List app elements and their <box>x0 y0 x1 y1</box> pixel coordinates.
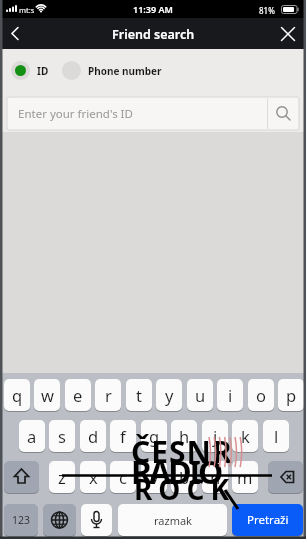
staticText: k <box>241 425 250 447</box>
staticText: h <box>179 425 190 447</box>
staticText: j <box>213 425 218 447</box>
staticText: e <box>73 384 83 406</box>
button[interactable]: l <box>263 420 289 452</box>
staticText: o <box>256 384 266 406</box>
staticText: RADIO <box>131 450 221 494</box>
staticText: Phone number <box>88 64 162 78</box>
button[interactable] <box>81 504 112 536</box>
staticText: v <box>150 466 159 488</box>
staticText: u <box>195 384 206 406</box>
button[interactable]: v <box>141 461 167 493</box>
button[interactable] <box>275 21 301 47</box>
button[interactable] <box>232 504 303 536</box>
staticText: r <box>105 384 112 406</box>
staticText: m <box>237 466 253 488</box>
button[interactable]: j <box>202 420 228 452</box>
staticText: w <box>41 384 54 406</box>
button[interactable]: a <box>19 420 45 452</box>
button[interactable]: g <box>141 420 167 452</box>
button[interactable] <box>2 21 28 47</box>
button[interactable]: k <box>232 420 258 452</box>
button[interactable]: p <box>278 379 304 411</box>
staticText: mt:s <box>19 5 35 15</box>
button[interactable] <box>4 461 39 493</box>
button[interactable]: Enter your friend's ID <box>7 97 299 130</box>
button[interactable]: r <box>95 379 121 411</box>
staticText: Friend search <box>112 26 195 43</box>
staticText: p <box>286 384 297 406</box>
button[interactable]: f <box>110 420 136 452</box>
staticText: n <box>210 466 221 488</box>
button[interactable]: Phone number <box>62 49 162 92</box>
button[interactable]: i <box>217 379 243 411</box>
staticText: c <box>119 466 127 488</box>
button[interactable]: z <box>49 461 75 493</box>
staticText: t <box>136 384 142 406</box>
button[interactable]: h <box>171 420 197 452</box>
staticText: d <box>88 425 99 447</box>
staticText: 123 <box>12 513 31 527</box>
button[interactable]: n <box>202 461 228 493</box>
staticText: a <box>27 425 37 447</box>
button[interactable]: b <box>171 461 197 493</box>
staticText: l <box>274 425 279 447</box>
staticText: ČESNR <box>131 431 233 472</box>
staticText: razmak <box>154 513 192 528</box>
staticText: ID <box>37 64 49 78</box>
staticText: ROCK <box>134 470 236 508</box>
button[interactable]: u <box>187 379 213 411</box>
button[interactable]: ID <box>11 49 49 92</box>
button[interactable] <box>268 461 303 493</box>
staticText: 81% <box>259 5 275 16</box>
button[interactable]: 123 <box>4 504 38 536</box>
staticText: Pretraži <box>247 512 289 528</box>
button[interactable]: q <box>4 379 30 411</box>
button[interactable]: e <box>65 379 91 411</box>
staticText: b <box>179 466 190 488</box>
button[interactable]: razmak <box>118 504 227 536</box>
button[interactable]: w <box>34 379 60 411</box>
staticText: Enter your friend's ID <box>18 106 133 122</box>
button[interactable]: t <box>126 379 152 411</box>
staticText: g <box>149 425 160 447</box>
staticText: f <box>120 425 126 447</box>
staticText: s <box>58 425 66 447</box>
button[interactable]: y <box>156 379 182 411</box>
button[interactable]: c <box>110 461 136 493</box>
staticText: z <box>58 466 66 488</box>
staticText: 11:39 AM <box>133 3 173 15</box>
button[interactable]: s <box>49 420 75 452</box>
button[interactable] <box>43 504 76 536</box>
button[interactable]: m <box>232 461 258 493</box>
staticText: y <box>165 384 174 406</box>
staticText: i <box>228 384 233 406</box>
button[interactable]: x <box>80 461 106 493</box>
button[interactable]: o <box>248 379 274 411</box>
button[interactable]: d <box>80 420 106 452</box>
staticText: x <box>89 466 98 488</box>
staticText: q <box>12 384 23 406</box>
